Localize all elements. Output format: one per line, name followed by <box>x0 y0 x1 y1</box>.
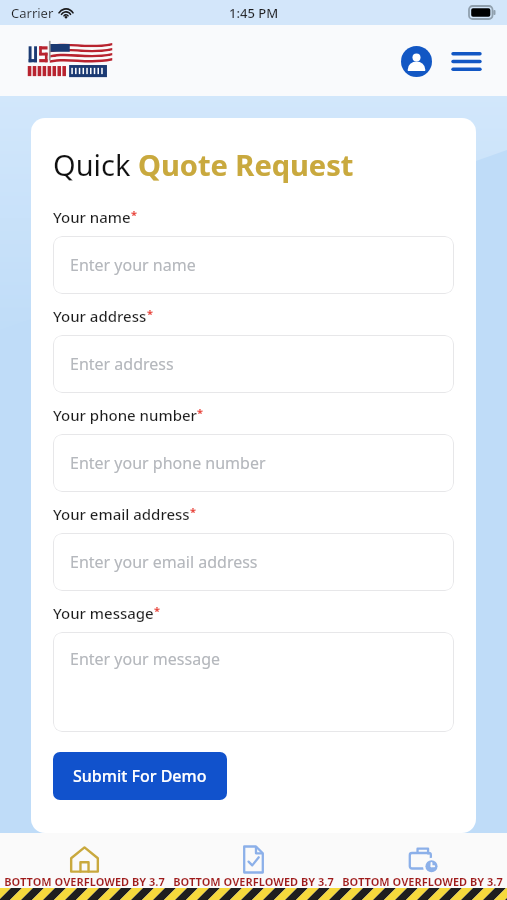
staticText: * <box>154 603 160 618</box>
button[interactable]: Enter address <box>53 335 454 393</box>
staticText: Your email address <box>53 504 190 524</box>
staticText: * <box>190 504 196 519</box>
staticText: Enter your name <box>70 254 196 276</box>
staticText: Enter your phone number <box>70 452 266 474</box>
staticText: Your address <box>53 306 147 326</box>
button[interactable]: Enter your email address <box>53 533 454 591</box>
staticText: Carrier <box>11 4 54 22</box>
staticText: Your message <box>53 603 154 623</box>
button[interactable]: Menu <box>445 40 487 82</box>
staticText: BOTTOM OVERFLOWED BY 3.7 PIXELS <box>0 874 169 889</box>
staticText: BOTTOM OVERFLOWED BY 3.7 PIXELS <box>169 874 338 889</box>
staticText: Submit For Demo <box>73 765 207 787</box>
staticText: BOTTOM OVERFLOWED BY 3.7 PIXELS <box>338 874 507 889</box>
button[interactable]: Account <box>395 40 437 82</box>
staticText: * <box>197 405 203 420</box>
button[interactable]: Orders <box>338 833 507 900</box>
button[interactable]: Enter your message <box>53 632 454 732</box>
staticText: Enter address <box>70 353 174 375</box>
button[interactable]: Enter your name <box>53 236 454 294</box>
button[interactable]: Enter your phone number <box>53 434 454 492</box>
staticText: * <box>131 207 137 222</box>
staticText: Your name <box>53 207 131 227</box>
staticText: Quote Request <box>138 145 354 184</box>
staticText: Quick <box>53 145 138 184</box>
button[interactable]: Home <box>0 833 169 900</box>
staticText: 1:45 PM <box>229 4 279 22</box>
button[interactable]: Submit For Demo <box>53 752 227 800</box>
staticText: * <box>147 306 153 321</box>
button[interactable]: Quotes <box>169 833 338 900</box>
staticText: Enter your email address <box>70 551 258 573</box>
staticText: Your phone number <box>53 405 197 425</box>
staticText: Enter your message <box>70 648 221 670</box>
